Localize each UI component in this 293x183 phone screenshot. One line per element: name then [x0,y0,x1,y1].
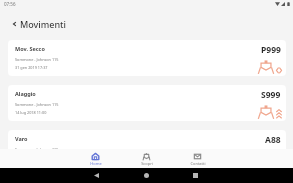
staticText: 07:56 [4,1,16,7]
staticText: Alaggio [15,90,36,97]
button[interactable]: Mov. Secco [8,40,286,76]
button[interactable]: Home [133,168,159,183]
staticText: 14 lug 2018 11:00 [15,110,47,115]
staticText: Sommone - Johnson 115 [15,57,59,62]
staticText: Sommone - Johnson 115 [15,102,59,107]
staticText: 31 gen 2019 17:37 [15,65,48,70]
staticText: P999 [261,44,281,56]
staticText: Sommone - Johnson 115 [15,147,59,152]
button[interactable]: Home [70,149,121,168]
staticText: Scopri [141,161,153,166]
staticText: S999 [261,89,281,101]
staticText: Mov. Secco [15,45,45,52]
staticText: Movimenti [20,18,66,30]
staticText: Varo [15,135,28,142]
button[interactable]: Recents [182,168,208,183]
staticText: Contatti [190,161,206,166]
button[interactable]: Back [8,10,20,37]
button[interactable]: Varo [8,130,286,166]
button[interactable]: Contatti [172,149,223,168]
staticText: A88 [265,134,281,146]
button[interactable]: Back [83,168,109,183]
button[interactable]: Alaggio [8,85,286,121]
staticText: Home [90,161,102,166]
button[interactable]: Scopri [121,149,172,168]
